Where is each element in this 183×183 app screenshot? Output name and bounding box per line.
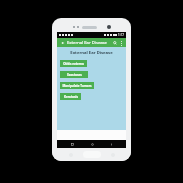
staticText: External Ear Disease [67,40,111,46]
staticText: Manipulate Tumors [62,84,92,88]
button[interactable]: Recent apps [68,140,76,148]
button[interactable]: Keratosis [60,93,81,100]
button[interactable]: Back [107,140,115,148]
staticText: Keratosis [64,95,78,99]
button[interactable]: Search [111,39,118,46]
staticText: Otitis externa [63,62,84,66]
staticText: 1:17 [118,33,124,37]
button[interactable]: Otitis externa [60,60,87,67]
button[interactable]: Back [59,39,66,46]
staticText: External Ear Disease [57,50,126,56]
button[interactable]: More options [118,40,124,46]
button[interactable]: Home [88,140,96,148]
button[interactable]: Manipulate Tumors [60,82,94,89]
button[interactable]: Exostoses [60,71,88,78]
staticText: Exostoses [67,73,82,77]
